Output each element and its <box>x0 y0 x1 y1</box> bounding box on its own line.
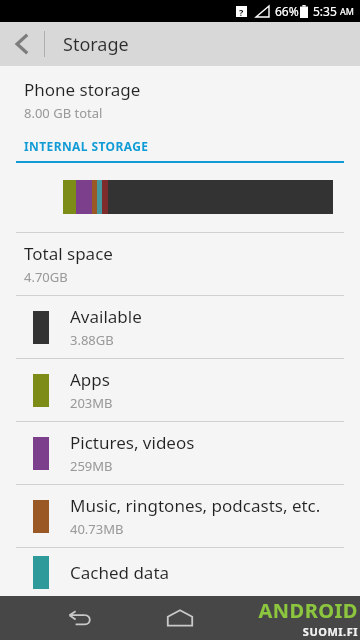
staticText: 8.00 GB total <box>24 104 103 122</box>
staticText: Total space <box>24 242 113 265</box>
staticText: 5:35 <box>313 3 337 19</box>
staticText: 259MB <box>70 457 113 475</box>
staticText: Cached data <box>70 561 170 584</box>
staticText: 66% <box>275 3 299 19</box>
button[interactable]: INTERNAL STORAGE <box>0 138 360 163</box>
staticText: 4.70GB <box>24 268 68 286</box>
button[interactable]: Back <box>0 22 44 66</box>
staticText: 3.88GB <box>70 331 114 349</box>
staticText: Available <box>70 305 142 328</box>
staticText: AM <box>340 5 354 17</box>
button[interactable]: Pictures, videos <box>0 422 360 484</box>
button[interactable]: Music, ringtones, podcasts, etc. <box>0 485 360 547</box>
staticText: Pictures, videos <box>70 431 195 454</box>
button[interactable]: Apps <box>0 359 360 421</box>
button[interactable]: Available <box>0 296 360 358</box>
staticText: 40.73MB <box>70 520 124 538</box>
staticText: INTERNAL STORAGE <box>24 138 149 154</box>
staticText: ? <box>239 6 244 17</box>
staticText: ANDROID <box>258 597 358 624</box>
staticText: Storage <box>63 32 129 57</box>
staticText: Phone storage <box>24 78 141 101</box>
staticText: SUOMI.FI <box>302 624 358 639</box>
button[interactable]: Back <box>60 598 100 638</box>
staticText: Apps <box>70 368 110 391</box>
staticText: Music, ringtones, podcasts, etc. <box>70 494 321 517</box>
staticText: 203MB <box>70 394 113 412</box>
button[interactable]: Cached data <box>0 548 360 596</box>
button[interactable]: Home <box>160 598 200 638</box>
